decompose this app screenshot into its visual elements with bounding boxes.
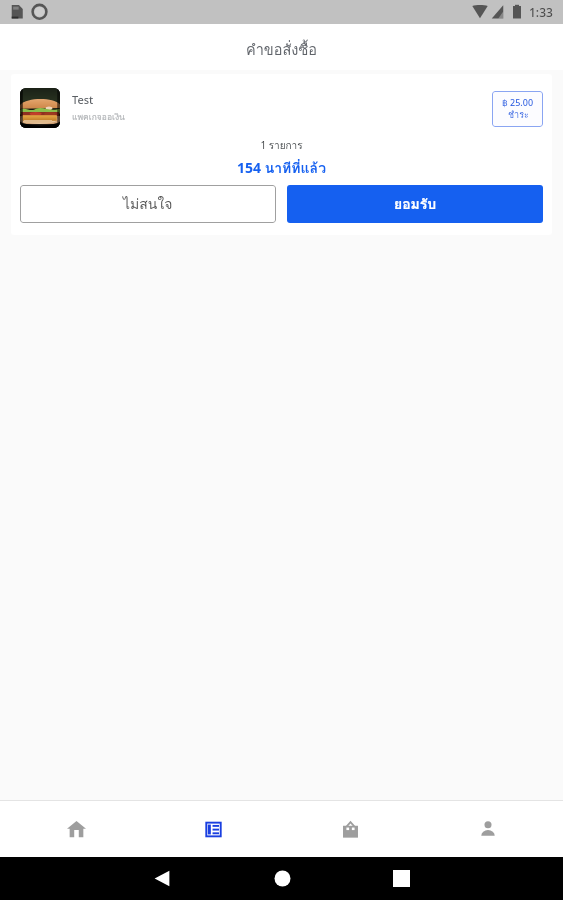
button[interactable]: Recents bbox=[379, 857, 423, 900]
button[interactable]: Home bbox=[7, 801, 145, 857]
button[interactable]: Home bbox=[260, 857, 304, 900]
staticText: 1 รายการ bbox=[20, 138, 543, 154]
button[interactable]: Shop bbox=[282, 801, 419, 857]
staticText: Test bbox=[72, 92, 94, 107]
button[interactable]: Back bbox=[140, 857, 184, 900]
button[interactable]: ไม่สนใจ bbox=[20, 185, 276, 223]
button[interactable]: ยอมรับ bbox=[287, 185, 543, 223]
button[interactable]: Orders bbox=[145, 801, 282, 857]
staticText: 154 นาทีที่แล้ว bbox=[20, 157, 543, 179]
button[interactable]: Profile bbox=[419, 801, 556, 857]
staticText: ฿ 25.00 bbox=[502, 96, 534, 108]
staticText: แพคเกจออเงิน bbox=[72, 110, 125, 124]
staticText: ไม่สนใจ bbox=[123, 193, 173, 215]
staticText: 1:33 bbox=[529, 4, 553, 20]
staticText: ยอมรับ bbox=[394, 193, 437, 215]
staticText: ชำระ bbox=[508, 108, 529, 122]
button[interactable]: Test bbox=[20, 88, 543, 128]
staticText: คำขอสั่งซื้อ bbox=[246, 38, 317, 61]
button[interactable]: ฿ 25.00 bbox=[492, 91, 543, 127]
